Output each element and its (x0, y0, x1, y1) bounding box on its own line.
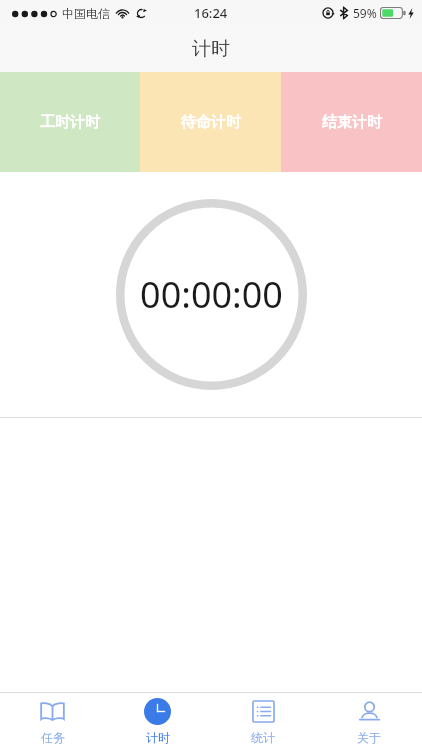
button[interactable]: 结束计时 (281, 72, 422, 172)
staticText: 中国电信 (62, 6, 110, 21)
staticText: 结束计时 (322, 113, 382, 132)
button[interactable]: 统计 (210, 693, 316, 750)
button[interactable]: 工时计时 (0, 72, 140, 172)
staticText: 关于 (357, 730, 381, 745)
button[interactable]: 任务 (0, 693, 105, 750)
staticText: 工时计时 (40, 113, 100, 132)
staticText: 任务 (41, 730, 65, 745)
staticText: 计时 (192, 37, 230, 61)
staticText: 待命计时 (181, 113, 241, 132)
staticText: 00:00:00 (140, 270, 283, 319)
button[interactable]: 计时 (105, 693, 210, 750)
staticText: 计时 (146, 730, 170, 745)
staticText: 16:24 (194, 4, 228, 22)
staticText: 统计 (251, 730, 275, 745)
staticText: 59% (353, 5, 377, 21)
button[interactable]: 计时器 (116, 199, 307, 390)
button[interactable]: 关于 (316, 693, 422, 750)
button[interactable]: 待命计时 (140, 72, 281, 172)
